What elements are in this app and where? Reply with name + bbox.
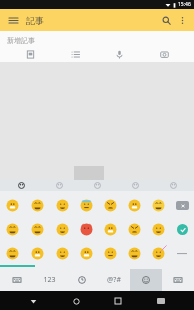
other: Backspace xyxy=(176,201,189,210)
button[interactable]: Emoji xyxy=(74,193,98,217)
button[interactable]: Emoji xyxy=(130,269,162,291)
button[interactable]: Confirm xyxy=(170,217,194,241)
staticText: 新增記事 xyxy=(7,36,35,45)
button[interactable]: More options xyxy=(174,12,190,28)
button[interactable]: Recents xyxy=(109,292,127,310)
other: Enter xyxy=(177,250,187,256)
button[interactable]: @?# xyxy=(98,269,130,291)
button[interactable]: Emoji xyxy=(25,241,50,265)
button[interactable]: Smileys xyxy=(4,180,38,191)
button[interactable]: Emoji xyxy=(98,193,122,217)
button[interactable]: Photo note xyxy=(149,48,179,61)
button[interactable]: Keyboard xyxy=(0,269,33,291)
button[interactable]: Emoji xyxy=(122,241,146,265)
button[interactable]: Emoji xyxy=(146,241,170,265)
button[interactable]: Image note xyxy=(15,48,45,61)
button[interactable]: Keyboard switch xyxy=(162,269,194,291)
button[interactable]: Emoji xyxy=(50,217,74,241)
button[interactable]: Emoji xyxy=(98,217,122,241)
button[interactable]: Emoji xyxy=(0,217,25,241)
button[interactable]: 123 xyxy=(33,269,66,291)
button[interactable]: Animals xyxy=(42,180,76,191)
button[interactable]: List note xyxy=(60,48,90,61)
button[interactable]: Emoji xyxy=(74,217,98,241)
button[interactable]: Objects xyxy=(156,180,190,191)
staticText: 123 xyxy=(43,275,56,285)
button[interactable]: Home xyxy=(67,292,85,310)
button[interactable]: Backspace xyxy=(170,193,194,217)
button[interactable]: Voice note xyxy=(104,48,134,61)
button[interactable]: 新增記事 xyxy=(0,31,194,62)
button[interactable]: Emoji xyxy=(122,193,146,217)
button[interactable]: Emoji xyxy=(25,217,50,241)
other: Confirm xyxy=(177,224,188,235)
button[interactable]: Hide keyboard xyxy=(24,292,42,310)
button[interactable]: Emoji xyxy=(146,193,170,217)
button[interactable]: Emoji xyxy=(50,241,74,265)
button[interactable]: Enter xyxy=(170,241,194,265)
button[interactable]: Emoji xyxy=(146,217,170,241)
button[interactable]: Emoji xyxy=(74,241,98,265)
button[interactable]: Switch keyboard xyxy=(152,292,170,310)
button[interactable]: Recent xyxy=(66,269,98,291)
button[interactable]: Search xyxy=(158,12,174,28)
staticText: 15:46 xyxy=(178,1,191,8)
button[interactable]: Food xyxy=(80,180,114,191)
button[interactable]: Emoji xyxy=(122,217,146,241)
staticText: 記事 xyxy=(26,15,44,26)
button[interactable]: Emoji xyxy=(98,241,122,265)
button[interactable]: Emoji xyxy=(50,193,74,217)
button[interactable]: Menu xyxy=(5,12,21,28)
button[interactable]: Emoji xyxy=(0,193,25,217)
button[interactable]: Travel xyxy=(118,180,152,191)
button[interactable]: Emoji xyxy=(25,193,50,217)
button[interactable]: Emoji xyxy=(0,241,25,265)
staticText: @?# xyxy=(107,275,121,285)
